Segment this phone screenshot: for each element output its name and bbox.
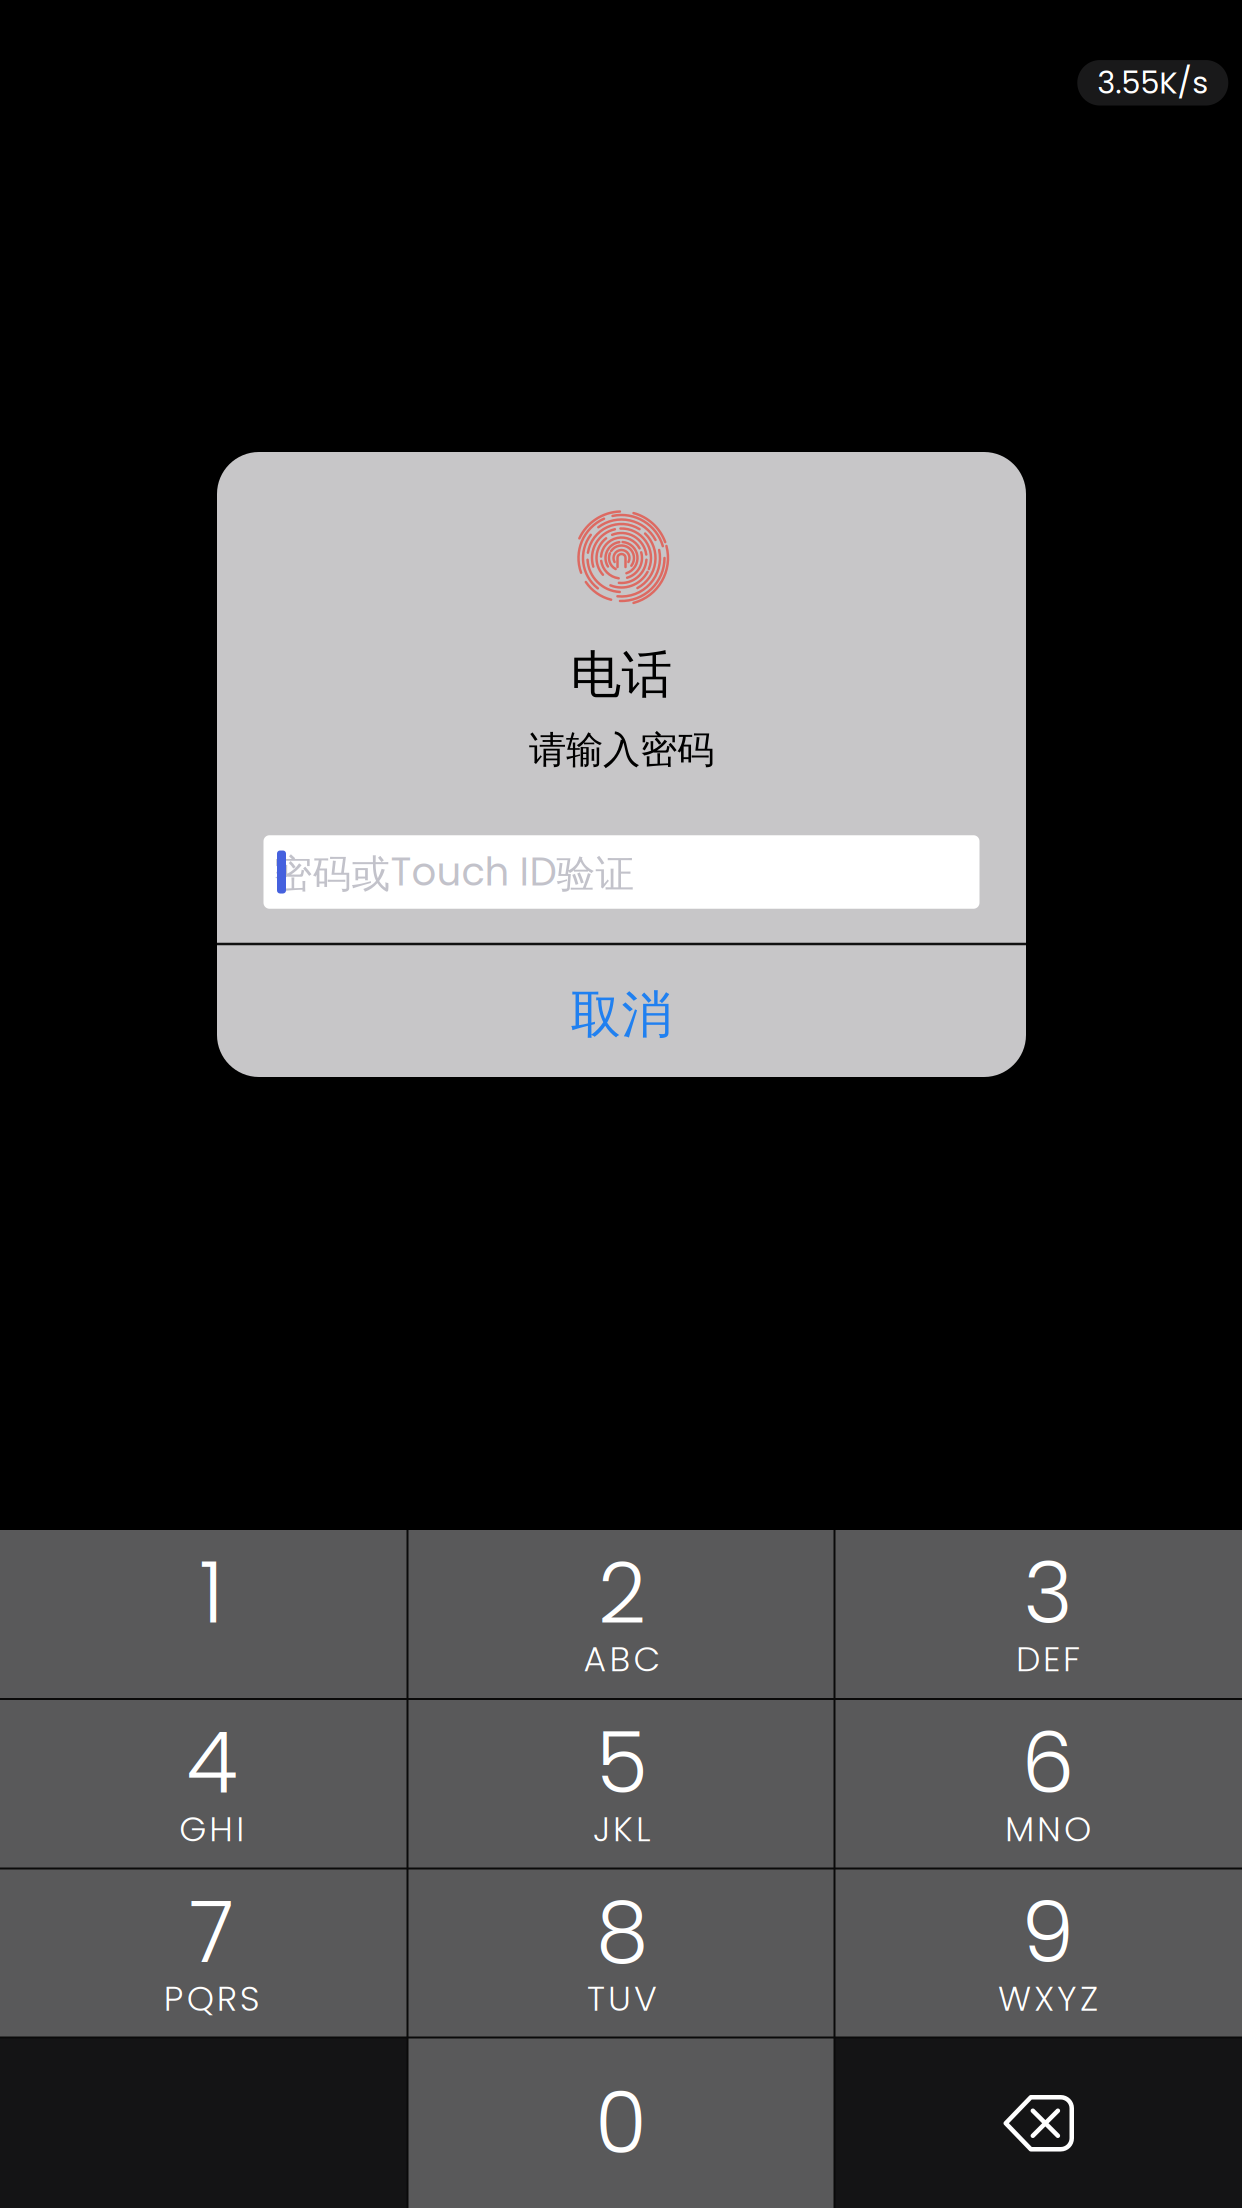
staticText: 请输入密码 <box>529 727 714 773</box>
button[interactable]: 7 <box>0 1869 406 2036</box>
staticText: 4 <box>186 1704 237 1822</box>
button[interactable]: Delete <box>835 2038 1242 2208</box>
staticText: PQRS <box>164 1974 260 2023</box>
button[interactable]: 3 <box>835 1530 1242 1698</box>
button[interactable]: 密码或Touch ID验证 <box>263 835 979 909</box>
staticText: 6 <box>1021 1704 1074 1822</box>
staticText: 3 <box>1023 1534 1072 1652</box>
staticText: JKL <box>593 1805 651 1853</box>
staticText: GHI <box>179 1805 244 1853</box>
staticText: DEF <box>1016 1635 1080 1683</box>
staticText: 取消 <box>570 984 672 1046</box>
staticText: 电话 <box>570 644 672 706</box>
staticText: 5 <box>596 1704 648 1822</box>
staticText: 密码或Touch ID验证 <box>273 845 634 899</box>
staticText: 1 <box>199 1534 224 1652</box>
staticText: 0 <box>595 2064 647 2182</box>
button[interactable]: 6 <box>835 1700 1242 1867</box>
button[interactable]: 2 <box>408 1530 833 1698</box>
staticText: 3.55K/s <box>1097 61 1208 104</box>
button[interactable]: 8 <box>408 1869 833 2036</box>
button[interactable]: 5 <box>408 1700 833 1867</box>
button[interactable]: 0 <box>408 2038 833 2208</box>
staticText: 2 <box>598 1534 646 1652</box>
staticText: ABC <box>583 1635 660 1683</box>
button[interactable]: 9 <box>835 1869 1242 2036</box>
staticText: MNO <box>1005 1805 1091 1853</box>
staticText: 9 <box>1021 1874 1074 1991</box>
staticText: WXYZ <box>998 1974 1098 2023</box>
staticText: 8 <box>596 1874 648 1991</box>
button[interactable]: 取消 <box>217 950 1026 1080</box>
staticText: 7 <box>189 1874 234 1991</box>
button[interactable]: 4 <box>0 1700 406 1867</box>
staticText: TUV <box>587 1974 657 2023</box>
button[interactable]: 1 <box>0 1530 406 1698</box>
